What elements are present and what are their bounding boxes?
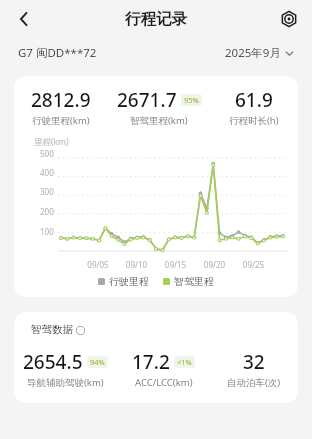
staticText: ACC/LCC(km) xyxy=(135,376,193,389)
staticText: 行驶里程 xyxy=(109,275,149,288)
staticText: 09/10 xyxy=(117,259,156,270)
staticText: 300 xyxy=(40,186,54,197)
staticText: 自动泊车(次) xyxy=(227,376,281,389)
staticText: 2654.5 xyxy=(23,349,83,375)
staticText: 2812.9 xyxy=(31,87,91,113)
staticText: 里程(km) xyxy=(34,136,69,148)
staticText: 导航辅助驾驶(km) xyxy=(27,376,104,389)
staticText: 200 xyxy=(40,206,54,217)
button[interactable]: 行驶里程 xyxy=(98,275,149,288)
staticText: 智驾数据 xyxy=(31,323,73,336)
staticText: 400 xyxy=(40,167,54,178)
staticText: 09/15 xyxy=(156,259,195,270)
staticText: 500 xyxy=(40,148,54,159)
staticText: 100 xyxy=(40,226,54,237)
staticText: 行程记录 xyxy=(125,9,187,29)
staticText: 09/25 xyxy=(234,259,273,270)
staticText: 智驾里程(km) xyxy=(130,114,188,127)
staticText: 2671.7 xyxy=(117,87,177,113)
staticText: 智驾里程 xyxy=(174,275,214,288)
staticText: 行驶里程(km) xyxy=(32,114,90,127)
staticText: 2025年9月 xyxy=(225,45,281,61)
staticText: G7 闽DD***72 xyxy=(18,45,97,61)
staticText: 32 xyxy=(243,349,265,375)
staticText: 09/05 xyxy=(79,259,117,270)
staticText: 17.2 xyxy=(132,349,170,375)
button[interactable]: 智驾里程 xyxy=(163,275,214,288)
staticText: 94% xyxy=(90,357,105,367)
button[interactable]: Back xyxy=(8,3,40,35)
staticText: 61.9 xyxy=(235,87,273,113)
button[interactable]: 2025年9月 xyxy=(225,45,294,61)
staticText: <1% xyxy=(177,357,192,367)
staticText: 行程时长(h) xyxy=(229,114,279,127)
staticText: 09/20 xyxy=(195,259,234,270)
button[interactable]: Settings xyxy=(274,4,304,34)
staticText: 95% xyxy=(184,95,199,105)
button[interactable]: Info xyxy=(75,325,85,335)
